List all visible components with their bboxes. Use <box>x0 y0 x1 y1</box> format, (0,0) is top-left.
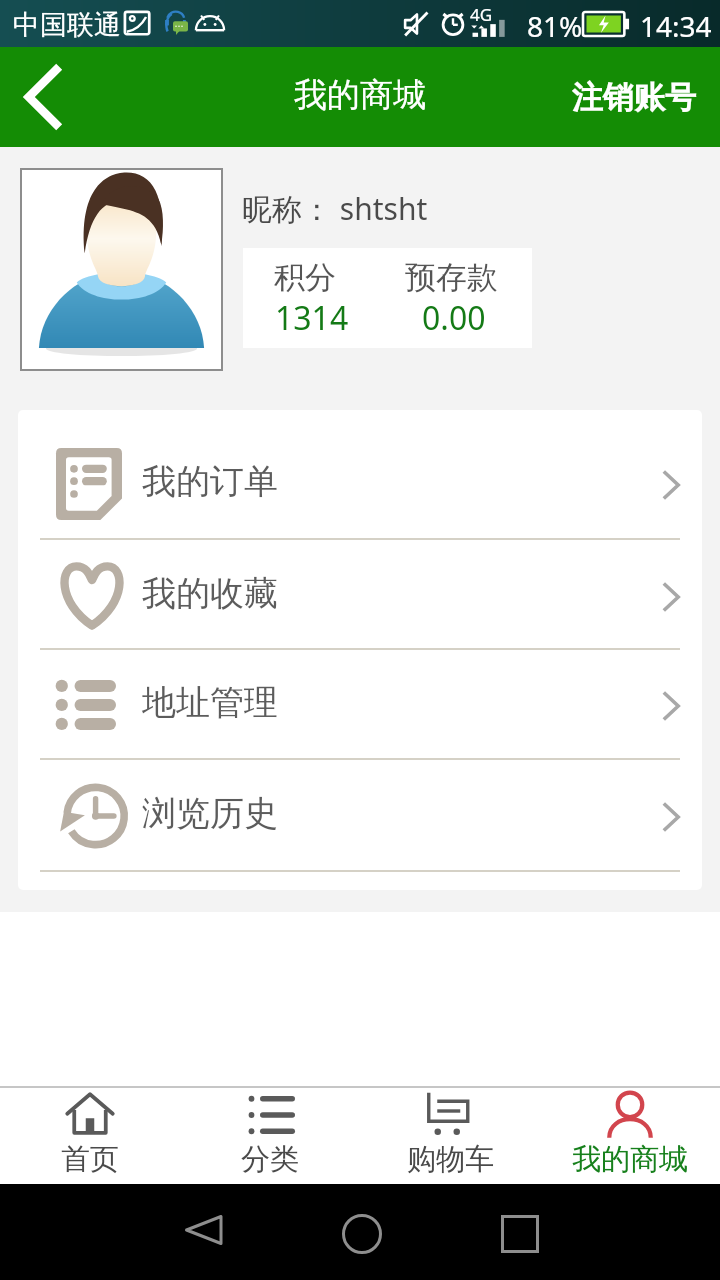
staticText: 4G <box>470 3 493 26</box>
staticText: 浏览历史 <box>142 792 278 835</box>
staticText: 注销账号 <box>572 78 696 117</box>
staticText: 我的订单 <box>142 460 278 503</box>
button[interactable]: 我的订单 <box>18 410 702 540</box>
button[interactable]: Back <box>0 47 92 147</box>
button[interactable]: 分类 <box>180 1086 360 1184</box>
staticText: 我的收藏 <box>142 572 278 615</box>
button[interactable]: 地址管理 <box>18 650 702 760</box>
staticText: 0.00 <box>422 296 486 340</box>
staticText: 14:34 <box>640 7 712 45</box>
button[interactable]: Back <box>162 1189 242 1269</box>
staticText: 81% <box>527 7 583 45</box>
staticText: 积分 <box>274 258 336 297</box>
staticText: 预存款 <box>405 258 498 297</box>
button[interactable]: Recents <box>480 1189 560 1269</box>
staticText: 我的商城 <box>572 1141 688 1178</box>
staticText: 昵称： shtsht <box>242 188 428 229</box>
staticText: 1314 <box>275 296 349 340</box>
button[interactable]: 首页 <box>0 1086 180 1184</box>
staticText: 我的商城 <box>294 74 426 116</box>
staticText: 地址管理 <box>142 681 278 724</box>
button[interactable]: 购物车 <box>360 1086 540 1184</box>
staticText: 分类 <box>241 1141 299 1178</box>
staticText: 购物车 <box>407 1141 494 1178</box>
staticText: 首页 <box>61 1141 119 1178</box>
button[interactable]: Home <box>322 1189 402 1269</box>
button[interactable]: 注销账号 <box>552 47 720 147</box>
staticText: 中国联通 <box>13 8 121 42</box>
button[interactable]: 浏览历史 <box>18 760 702 872</box>
button[interactable]: 我的商城 <box>540 1086 720 1184</box>
button[interactable]: 我的收藏 <box>18 540 702 650</box>
